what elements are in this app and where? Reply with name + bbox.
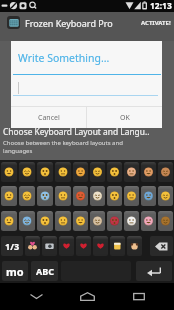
button[interactable]: Emoji — [1, 211, 17, 231]
button[interactable]: Emoji — [73, 186, 88, 206]
button[interactable]: Recent apps — [123, 283, 155, 310]
staticText: mo — [6, 264, 24, 279]
button[interactable]: Enter — [136, 261, 172, 281]
button[interactable]: OK — [87, 107, 162, 128]
button[interactable]: Emoji — [37, 186, 53, 206]
button[interactable]: Emoji — [93, 236, 108, 256]
button[interactable]: Emoji — [107, 211, 122, 231]
staticText: 12:13 — [150, 0, 172, 12]
staticText: Write Something... — [18, 51, 110, 65]
staticText: ACTIVATE! — [141, 19, 171, 27]
button[interactable]: Cancel — [11, 107, 86, 128]
staticText: Cancel — [38, 113, 60, 123]
button[interactable]: Emoji — [124, 211, 139, 231]
button[interactable]: Emoji — [37, 162, 53, 182]
staticText: ABC — [36, 265, 54, 277]
button[interactable]: Backspace — [150, 236, 173, 256]
button[interactable]: Emoji — [124, 186, 139, 206]
button[interactable]: Emoji — [158, 211, 173, 231]
button[interactable]: Emoji — [1, 162, 17, 182]
button[interactable]: Emoji — [158, 162, 173, 182]
button[interactable]: Emoji — [141, 211, 156, 231]
button[interactable]: Emoji — [55, 162, 71, 182]
button[interactable]: Home — [71, 283, 103, 310]
button[interactable]: Emoji — [90, 211, 105, 231]
button[interactable]: Emoji — [73, 211, 88, 231]
button[interactable]: Emoji — [124, 162, 139, 182]
button[interactable]: ACTIVATE! — [138, 12, 174, 33]
button[interactable]: Back — [20, 283, 52, 310]
button[interactable]: Emoji — [158, 186, 173, 206]
staticText: OK — [120, 113, 130, 123]
button[interactable]: Emoji keyboard — [2, 261, 28, 281]
button[interactable]: Emoji — [19, 211, 35, 231]
button[interactable]: Emoji — [25, 236, 40, 256]
button[interactable]: Emoji — [76, 236, 91, 256]
button[interactable]: Emoji — [107, 162, 122, 182]
staticText: Choose Keyboard Layout and Langu.. — [3, 126, 150, 137]
button[interactable]: Emoji — [110, 236, 125, 256]
button[interactable]: Emoji — [90, 162, 105, 182]
button[interactable]: Emoji — [73, 162, 88, 182]
button[interactable]: Emoji — [55, 211, 71, 231]
button[interactable]: Emoji — [127, 236, 142, 256]
staticText: languages — [3, 147, 33, 155]
button[interactable]: Emoji — [141, 186, 156, 206]
button[interactable]: Emoji — [42, 236, 57, 256]
button[interactable]: Emoji — [1, 186, 17, 206]
button[interactable]: Emoji — [55, 186, 71, 206]
button[interactable]: ABC — [31, 261, 58, 281]
staticText: Choose between the keyboard layouts and — [3, 139, 123, 147]
button[interactable]: Emoji — [90, 186, 105, 206]
button[interactable]: Emoji — [107, 186, 122, 206]
button[interactable]: 1/3 — [1, 236, 23, 256]
staticText: Frozen Keyboard Pro — [25, 17, 113, 29]
button[interactable]: Emoji — [19, 162, 35, 182]
staticText: 1/3 — [5, 240, 20, 252]
button[interactable]: Emoji — [141, 162, 156, 182]
button[interactable]: Emoji — [19, 186, 35, 206]
button[interactable]: Emoji — [37, 211, 53, 231]
button[interactable]: Emoji — [59, 236, 74, 256]
